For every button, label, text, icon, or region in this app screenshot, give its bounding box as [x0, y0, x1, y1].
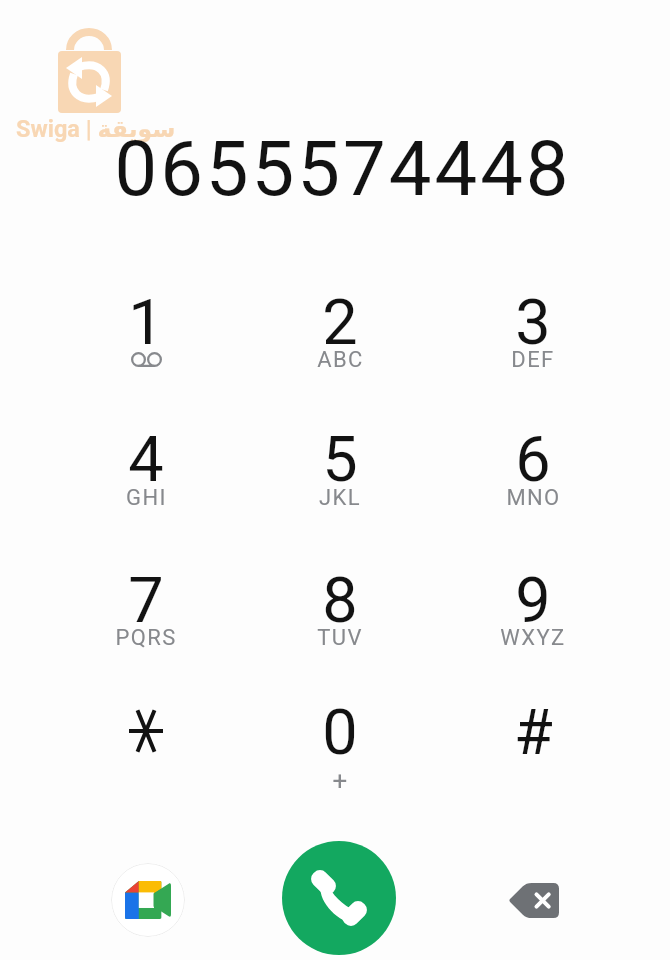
button[interactable]: 4 GHI	[71, 414, 221, 542]
staticText: 2	[322, 286, 358, 360]
button[interactable]: Backspace	[491, 862, 575, 938]
button[interactable]: *	[71, 687, 221, 815]
staticText: 0655574448	[114, 124, 572, 213]
staticText: Swiga | سويقة	[16, 115, 176, 143]
staticText: 0	[322, 696, 358, 770]
button[interactable]: 9 WXYZ	[458, 555, 608, 683]
button[interactable]: 6 MNO	[458, 414, 608, 542]
staticText: 6	[515, 423, 551, 497]
button[interactable]: 8 TUV	[265, 555, 415, 683]
staticText: +	[332, 766, 349, 796]
button[interactable]: Call	[282, 841, 396, 955]
button[interactable]: 7 PQRS	[71, 555, 221, 683]
staticText: 5	[322, 423, 358, 497]
button[interactable]: #	[458, 687, 608, 815]
staticText: WXYZ	[500, 625, 566, 651]
button[interactable]: 0 +	[265, 687, 415, 815]
staticText: TUV	[317, 625, 363, 651]
staticText: ABC	[317, 347, 364, 373]
button[interactable]: Video call	[111, 863, 185, 937]
staticText: 8	[322, 564, 358, 638]
staticText: MNO	[506, 485, 561, 511]
staticText: 4	[128, 423, 164, 497]
staticText: 9	[515, 564, 551, 638]
staticText: PQRS	[115, 625, 177, 651]
button[interactable]: 2 ABC	[265, 277, 415, 405]
staticText: 7	[128, 564, 164, 638]
staticText: DEF	[511, 347, 555, 373]
staticText: #	[514, 696, 553, 770]
staticText: 1	[128, 286, 164, 360]
button[interactable]: 5 JKL	[265, 414, 415, 542]
staticText: GHI	[126, 485, 167, 511]
button[interactable]: 1	[71, 277, 221, 405]
button[interactable]: 3 DEF	[458, 277, 608, 405]
staticText: 3	[515, 286, 551, 360]
staticText: JKL	[319, 485, 361, 511]
